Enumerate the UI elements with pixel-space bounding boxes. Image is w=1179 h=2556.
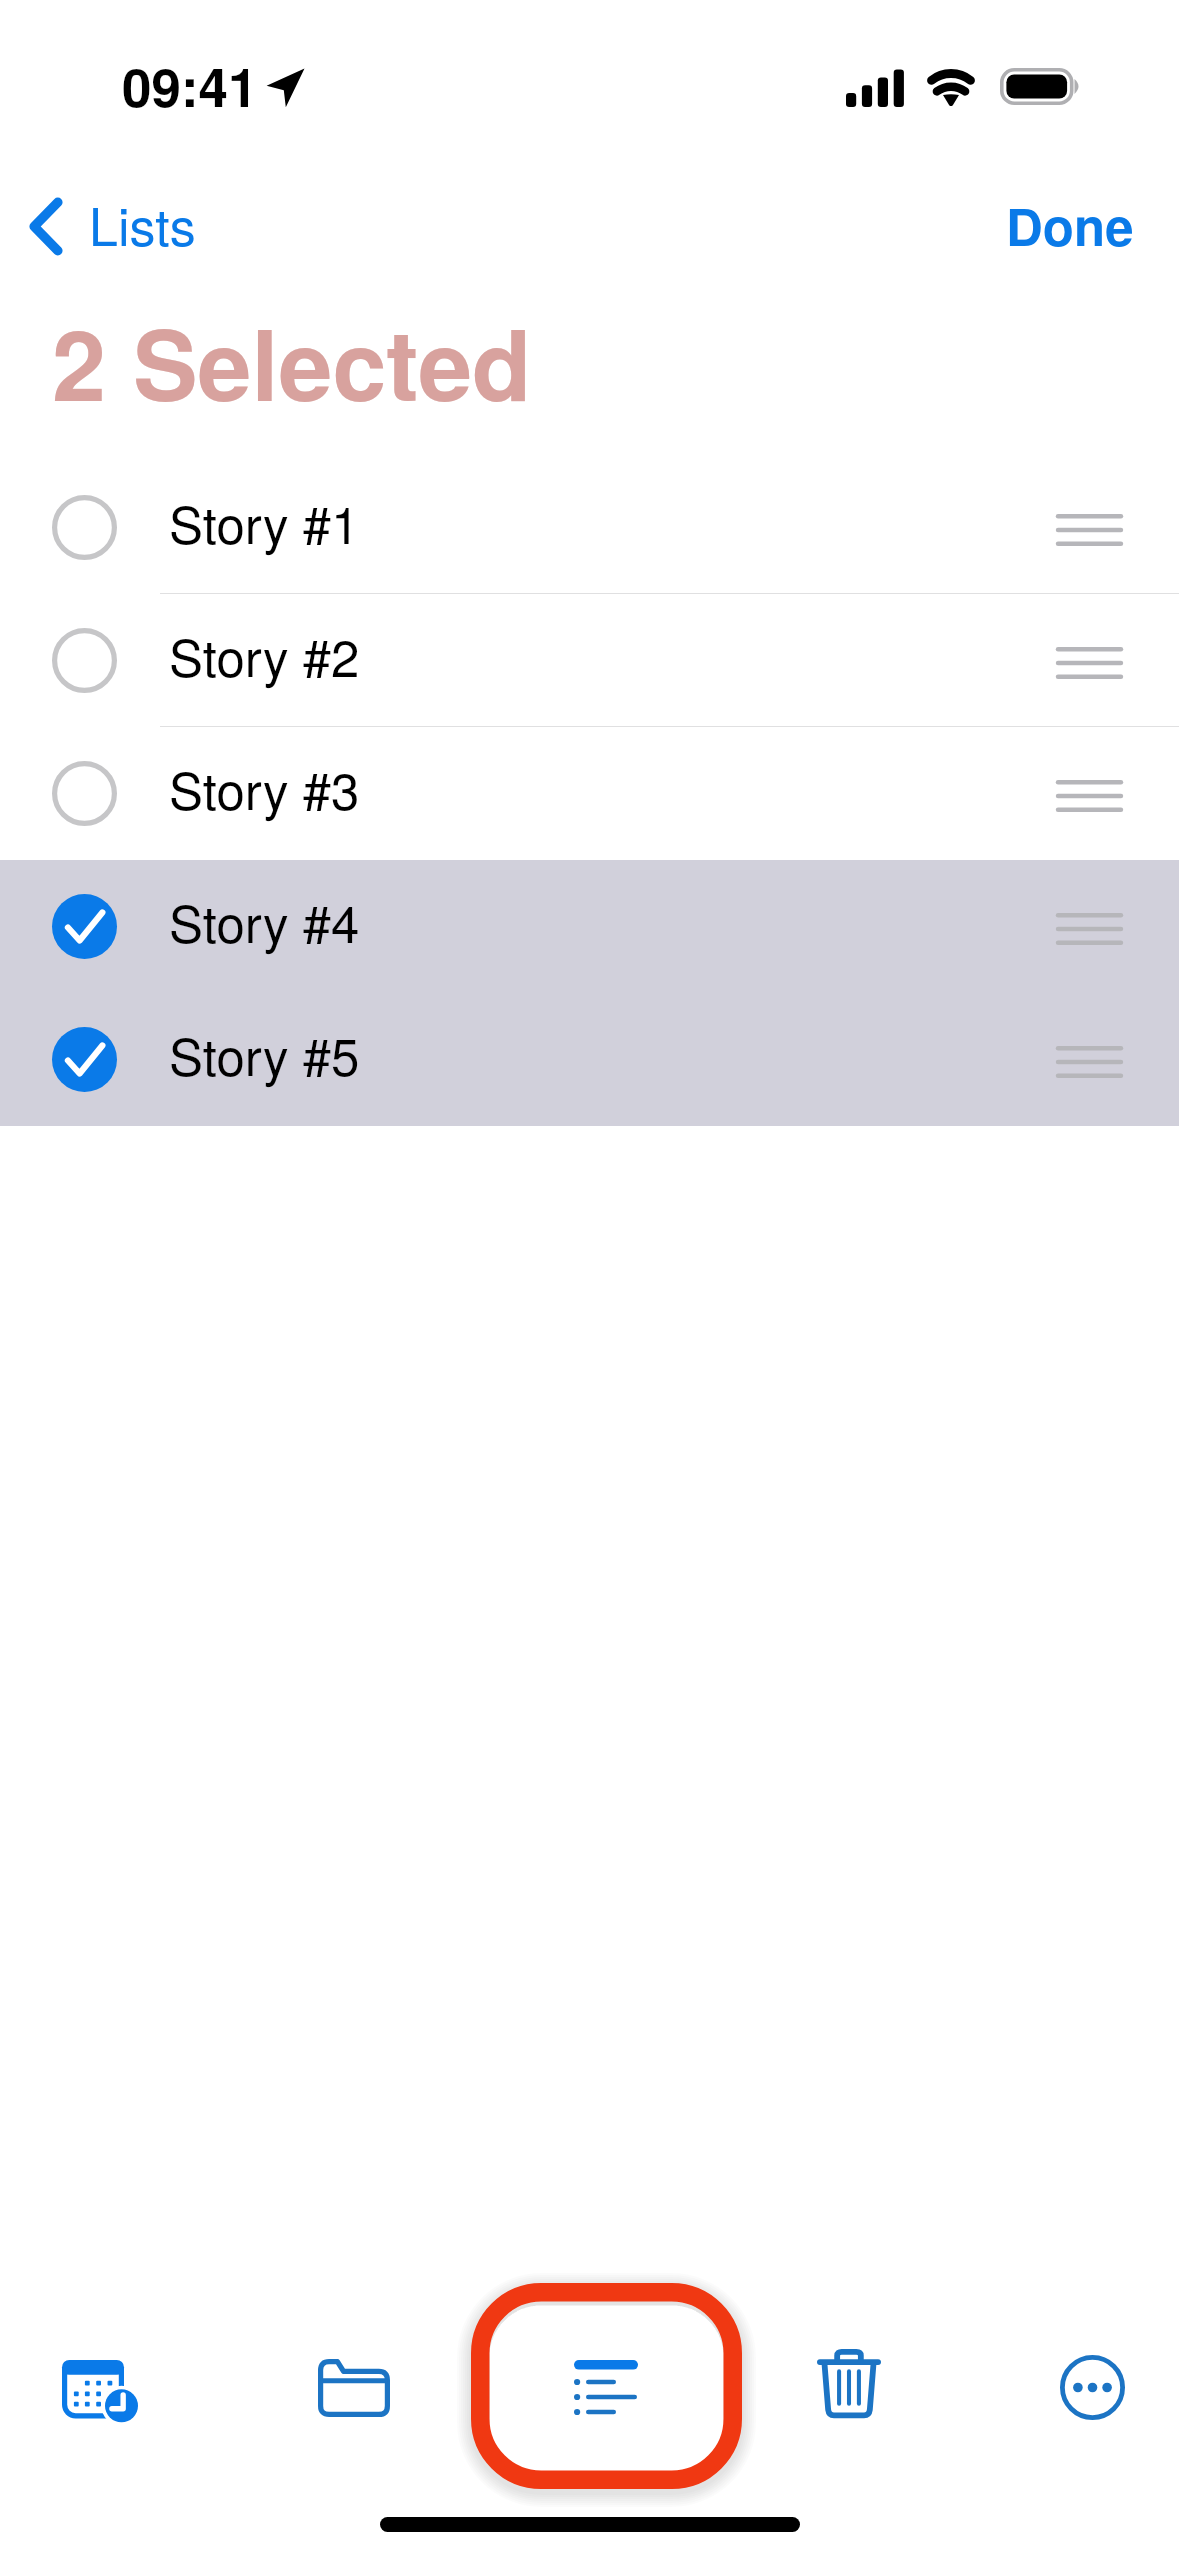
staticText: Lists	[89, 186, 196, 258]
button[interactable]: Mark Story #4 not completed	[52, 894, 117, 959]
button[interactable]: Add date and time	[52, 2348, 148, 2444]
button[interactable]: Mark Story #5 not completed	[52, 1027, 117, 1092]
button[interactable]: Mark Story #1 completed	[0, 461, 1179, 594]
button[interactable]: Mark Story #1 completed	[52, 495, 117, 560]
button[interactable]: Delete	[802, 2338, 898, 2434]
staticText: Story #5	[169, 1017, 360, 1090]
button[interactable]: Mark Story #2 completed	[52, 628, 117, 693]
button[interactable]: Move to folder	[306, 2340, 402, 2436]
button[interactable]: Back to Lists	[14, 178, 214, 274]
staticText: Story #1	[169, 485, 360, 558]
button[interactable]: Mark Story #4 not completed	[0, 860, 1179, 993]
staticText: 09:41	[122, 47, 258, 123]
button[interactable]: Mark Story #3 completed	[0, 727, 1179, 860]
button[interactable]: Mark Story #2 completed	[0, 594, 1179, 727]
button[interactable]: More options	[1044, 2339, 1140, 2435]
staticText: Story #4	[169, 884, 360, 957]
button[interactable]: Mark Story #5 not completed	[0, 993, 1179, 1126]
staticText: 2 Selected	[52, 292, 532, 431]
staticText: Story #2	[169, 618, 360, 691]
button[interactable]: Done	[982, 175, 1158, 275]
button[interactable]: Mark Story #3 completed	[52, 761, 117, 826]
button[interactable]: Show list details	[471, 2283, 742, 2489]
staticText: Done	[1006, 189, 1134, 261]
staticText: Story #3	[169, 751, 360, 824]
